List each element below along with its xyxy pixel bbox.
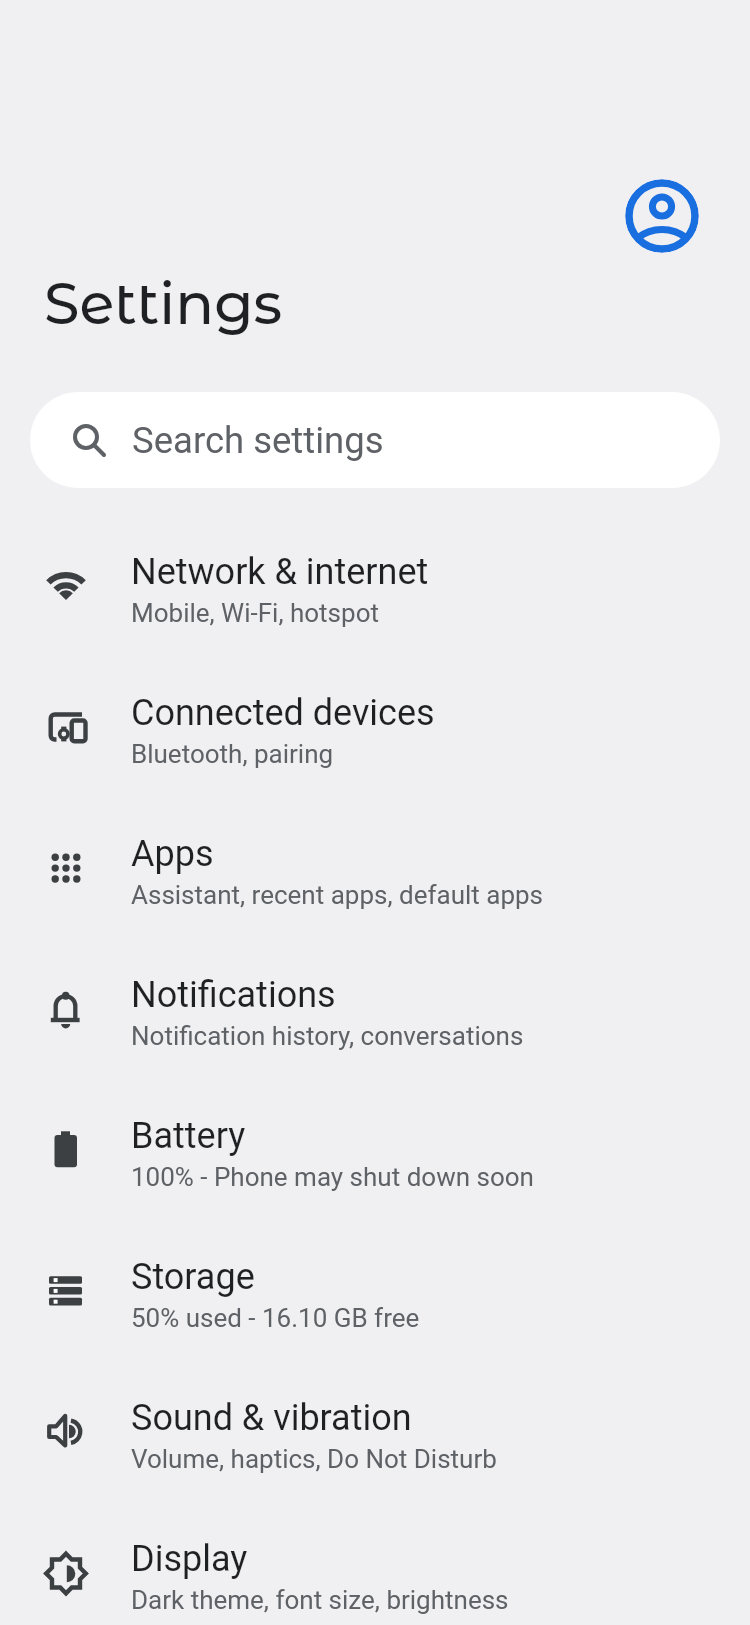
staticText: Display (131, 1538, 248, 1580)
staticText: Storage (131, 1256, 255, 1298)
staticText: Search settings (132, 419, 384, 462)
button[interactable] (0, 798, 750, 939)
staticText: Battery (131, 1115, 246, 1157)
staticText: Notification history, conversations (131, 1021, 524, 1051)
button[interactable] (0, 1221, 750, 1362)
button[interactable] (30, 392, 720, 488)
staticText: Assistant, recent apps, default apps (131, 880, 544, 910)
staticText: Settings (44, 269, 283, 338)
staticText: Dark theme, font size, brightness (131, 1585, 509, 1615)
staticText: Sound & vibration (131, 1397, 412, 1439)
staticText: 50% used - 16.10 GB free (131, 1303, 420, 1333)
staticText: Network & internet (131, 551, 429, 593)
button[interactable] (625, 179, 699, 253)
button[interactable] (0, 939, 750, 1080)
staticText: Volume, haptics, Do Not Disturb (131, 1444, 497, 1474)
staticText: Mobile, Wi-Fi, hotspot (131, 598, 379, 628)
button[interactable] (0, 1503, 750, 1625)
button[interactable] (0, 1362, 750, 1503)
staticText: Bluetooth, pairing (131, 739, 334, 769)
button[interactable] (0, 516, 750, 657)
staticText: Connected devices (131, 692, 435, 734)
button[interactable] (0, 657, 750, 798)
staticText: Apps (131, 833, 214, 875)
staticText: Notifications (131, 974, 336, 1016)
button[interactable] (0, 1080, 750, 1221)
staticText: 100% - Phone may shut down soon (131, 1162, 534, 1192)
